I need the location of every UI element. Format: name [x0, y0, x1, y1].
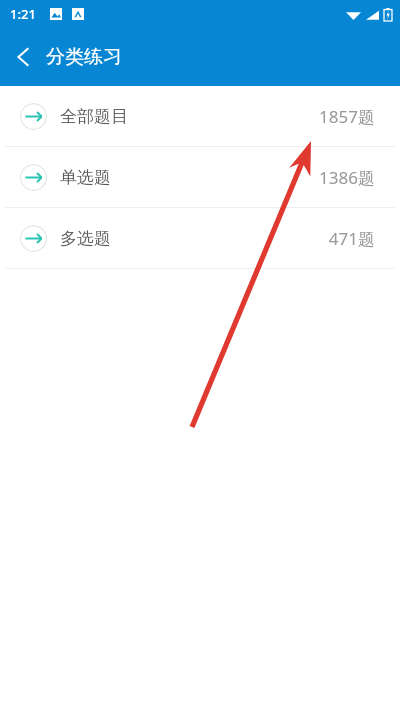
other: Back — [14, 47, 34, 67]
button[interactable]: Back — [0, 37, 136, 77]
staticText: 全部题目 — [60, 106, 128, 127]
button[interactable]: 多选题 — [0, 208, 400, 268]
staticText: 471题 — [328, 227, 375, 250]
staticText: 1:21 — [10, 5, 36, 23]
staticText: 1857题 — [319, 105, 375, 128]
button[interactable]: 单选题 — [0, 147, 400, 207]
staticText: 分类练习 — [46, 45, 122, 69]
staticText: 单选题 — [60, 167, 111, 188]
staticText: 1386题 — [319, 166, 375, 189]
button[interactable]: 全部题目 — [0, 86, 400, 146]
staticText: 多选题 — [60, 228, 111, 249]
